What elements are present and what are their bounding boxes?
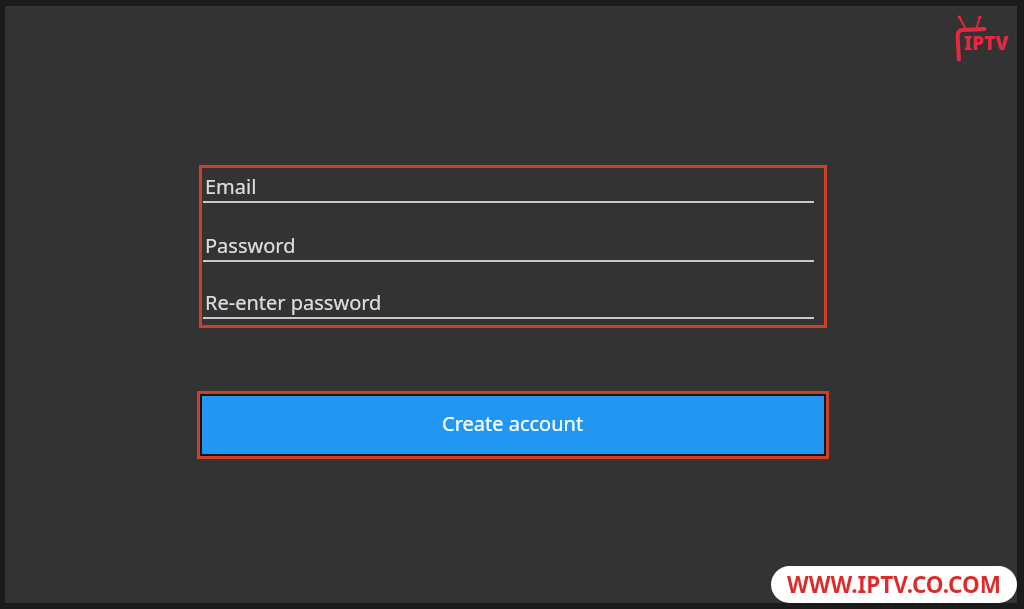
- button[interactable]: IPTV logo: [950, 8, 1014, 56]
- button[interactable]: Re-enter password: [203, 283, 816, 319]
- staticText: IPTV: [964, 30, 1009, 56]
- staticText: Re-enter password: [205, 289, 382, 316]
- button[interactable]: Create account: [202, 396, 824, 454]
- button[interactable]: WWW.IPTV.CO.COM: [771, 566, 1017, 603]
- staticText: WWW.IPTV.CO.COM: [787, 569, 1001, 600]
- staticText: Email: [205, 173, 257, 200]
- staticText: Password: [205, 232, 296, 259]
- staticText: Create account: [442, 410, 584, 437]
- button[interactable]: Email: [203, 167, 816, 203]
- button[interactable]: Password: [203, 226, 816, 262]
